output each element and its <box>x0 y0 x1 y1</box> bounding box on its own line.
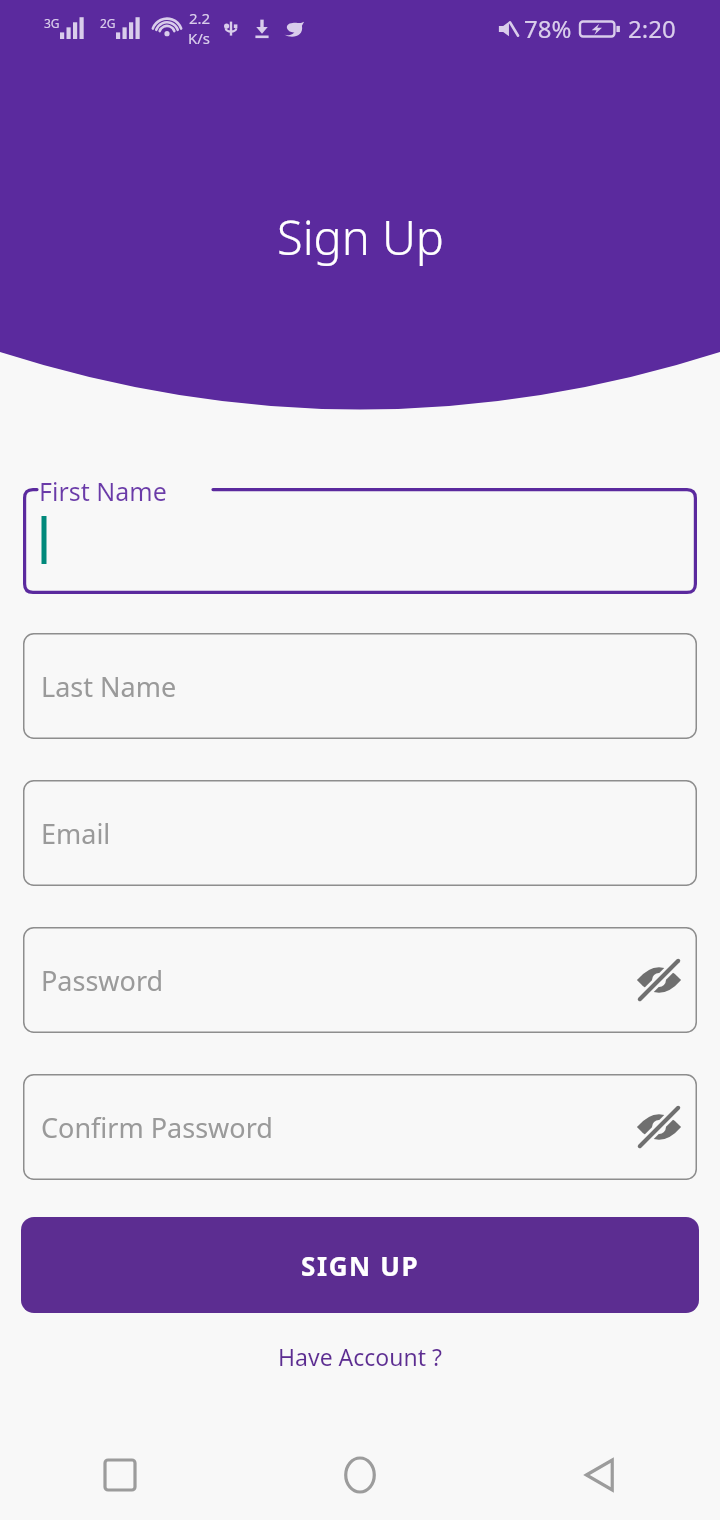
staticText: 78% <box>524 12 572 45</box>
button[interactable]: Recent apps <box>87 1442 153 1508</box>
button[interactable]: Confirm Password <box>23 1074 697 1180</box>
staticText: Sign Up <box>277 205 444 269</box>
staticText: 2:20 <box>628 12 676 45</box>
staticText: Email <box>41 815 111 852</box>
staticText: 2.2 <box>189 8 211 28</box>
button[interactable]: Have Account ? <box>260 1333 460 1380</box>
button[interactable]: Password <box>23 927 697 1033</box>
button[interactable]: Toggle password visibility <box>627 948 691 1012</box>
staticText: K/s <box>188 28 211 48</box>
button[interactable]: SIGN UP <box>21 1217 699 1313</box>
button[interactable]: Email <box>23 780 697 886</box>
button[interactable]: Back <box>567 1442 633 1508</box>
staticText: Password <box>41 962 164 999</box>
staticText: Confirm Password <box>41 1109 273 1146</box>
staticText: SIGN UP <box>301 1248 420 1283</box>
staticText: First Name <box>39 474 167 508</box>
staticText: 3G <box>44 15 60 31</box>
button[interactable]: Last Name <box>23 633 697 739</box>
button[interactable]: First Name <box>23 488 697 594</box>
button[interactable]: Home <box>327 1442 393 1508</box>
staticText: Last Name <box>41 668 177 705</box>
button[interactable]: Toggle password visibility <box>627 1095 691 1159</box>
staticText: 2G <box>100 15 116 31</box>
staticText: Have Account ? <box>278 1341 442 1372</box>
